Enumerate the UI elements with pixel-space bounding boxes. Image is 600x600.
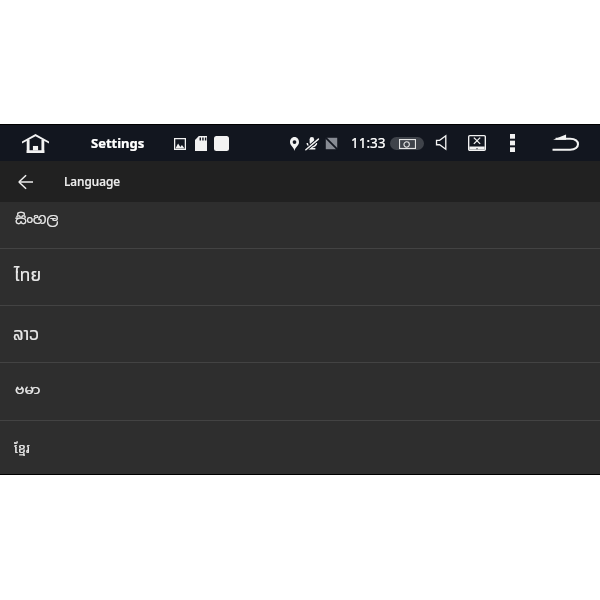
button[interactable]: ខ្មែរ <box>0 420 600 477</box>
button[interactable]: Back <box>544 125 586 160</box>
button[interactable]: Navigate up <box>8 161 42 202</box>
button[interactable]: ລາວ <box>0 305 600 362</box>
button[interactable]: Home <box>14 126 56 161</box>
staticText: ລາວ <box>13 320 40 348</box>
staticText: 11:33 <box>351 134 386 152</box>
button[interactable]: More options <box>503 127 521 158</box>
staticText: සිංහල <box>15 210 59 228</box>
staticText: Settings <box>91 134 145 152</box>
button[interactable]: ไทย <box>0 247 600 304</box>
button[interactable]: ဗမာ <box>0 362 600 419</box>
button[interactable]: සිංහල <box>0 202 600 248</box>
staticText: ဗမာ <box>15 381 41 400</box>
staticText: ไทย <box>14 262 42 289</box>
button[interactable]: Camera <box>390 137 424 150</box>
staticText: Language <box>64 173 120 189</box>
staticText: ខ្មែរ <box>14 439 30 457</box>
